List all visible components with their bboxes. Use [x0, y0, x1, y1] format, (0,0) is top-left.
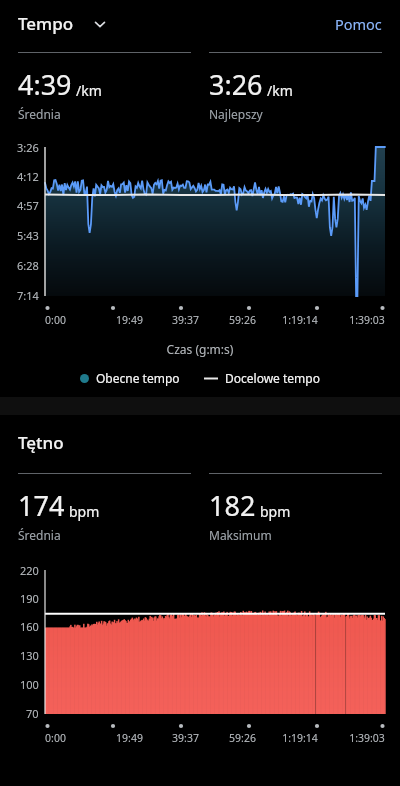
staticText: Średnia — [18, 527, 61, 543]
staticText: 5:43 — [17, 228, 39, 243]
staticText: Obecne tempo — [96, 370, 180, 386]
staticText: 190 — [20, 591, 39, 606]
button[interactable]: Tempo — [18, 8, 108, 39]
staticText: Pomoc — [335, 14, 382, 34]
staticText: bpm — [260, 502, 291, 521]
staticText: 59:26 — [229, 313, 256, 327]
staticText: 7:14 — [17, 288, 39, 303]
staticText: 1:39:03 — [349, 731, 385, 745]
staticText: 174 — [18, 487, 65, 524]
staticText: 4:12 — [17, 169, 39, 184]
staticText: 1:19:14 — [282, 731, 318, 745]
staticText: /km — [267, 81, 293, 100]
staticText: 3:26 — [17, 140, 39, 155]
staticText: 6:28 — [17, 258, 39, 273]
staticText: Czas (g:m:s) — [0, 341, 400, 357]
staticText: 4:57 — [17, 198, 39, 213]
staticText: bpm — [69, 502, 100, 521]
staticText: 130 — [20, 648, 39, 663]
staticText: /km — [76, 81, 102, 100]
staticText: 19:49 — [116, 313, 143, 327]
staticText: Tempo — [18, 12, 74, 35]
staticText: 4:39 — [18, 66, 72, 103]
button[interactable]: Pomoc — [333, 10, 384, 38]
staticText: Maksimum — [209, 527, 272, 543]
staticText: Docelowe tempo — [225, 370, 320, 386]
staticText: 39:37 — [172, 313, 199, 327]
staticText: 0:00 — [45, 731, 66, 745]
staticText: 3:26 — [209, 66, 263, 103]
staticText: 160 — [20, 619, 39, 634]
staticText: 1:39:03 — [349, 313, 385, 327]
staticText: 100 — [20, 677, 39, 692]
staticText: 19:49 — [116, 731, 143, 745]
staticText: Najlepszy — [209, 106, 263, 122]
staticText: Średnia — [18, 106, 61, 122]
staticText: 70 — [26, 706, 39, 721]
staticText: 1:19:14 — [282, 313, 318, 327]
staticText: 182 — [209, 487, 256, 524]
staticText: 0:00 — [45, 313, 66, 327]
button[interactable]: Tętno — [0, 431, 400, 454]
staticText: Tętno — [18, 431, 64, 454]
staticText: 59:26 — [229, 731, 256, 745]
other: Change metric — [92, 16, 108, 32]
staticText: 220 — [20, 563, 39, 578]
staticText: 39:37 — [172, 731, 199, 745]
